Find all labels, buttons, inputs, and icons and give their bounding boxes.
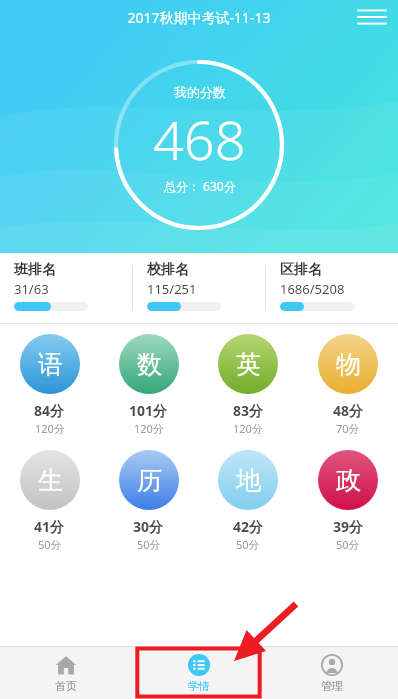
staticText: 42分	[233, 517, 264, 536]
staticText: 120分	[35, 421, 65, 436]
staticText: 物	[336, 349, 361, 380]
button[interactable]: 历	[99, 450, 198, 552]
button[interactable]: 政	[298, 450, 398, 552]
button[interactable]: 数	[99, 334, 198, 436]
button[interactable]: 区排名	[266, 253, 398, 323]
button[interactable]: 班排名	[0, 253, 132, 323]
staticText: 50分	[336, 537, 360, 552]
staticText: 84分	[34, 401, 65, 420]
button[interactable]: 英	[198, 334, 298, 436]
staticText: 30分	[133, 517, 164, 536]
staticText: 校排名	[147, 261, 189, 279]
button[interactable]: 地	[198, 450, 298, 552]
staticText: 41分	[34, 517, 65, 536]
staticText: 班排名	[14, 261, 56, 279]
staticText: 83分	[233, 401, 264, 420]
staticText: 生	[38, 465, 63, 496]
staticText: 101分	[129, 401, 168, 420]
staticText: 120分	[134, 421, 164, 436]
button[interactable]: 管理	[265, 647, 398, 699]
staticText: 我的分数	[174, 84, 226, 100]
staticText: 1686/5208	[280, 280, 345, 298]
staticText: 历	[137, 465, 162, 496]
staticText: 115/251	[147, 280, 197, 298]
staticText: 39分	[333, 517, 364, 536]
staticText: 英	[236, 349, 261, 380]
staticText: 学情	[188, 679, 210, 693]
button[interactable]: 校排名	[133, 253, 265, 323]
button[interactable]: 语	[0, 334, 99, 436]
staticText: 70分	[336, 421, 360, 436]
button[interactable]: 首页	[0, 647, 132, 699]
staticText: 468	[153, 102, 246, 176]
button[interactable]: 学情	[188, 647, 210, 699]
staticText: 120分	[233, 421, 263, 436]
staticText: 地	[236, 465, 261, 496]
button[interactable]: 生	[0, 450, 99, 552]
staticText: 区排名	[280, 261, 322, 279]
staticText: 50分	[137, 537, 161, 552]
staticText: 首页	[55, 679, 77, 693]
staticText: 2017秋期中考试-11-13	[127, 8, 271, 27]
staticText: 语	[38, 349, 63, 380]
button[interactable]: 物	[298, 334, 398, 436]
staticText: 管理	[321, 679, 343, 693]
staticText: 总分： 630分	[164, 178, 236, 194]
staticText: 31/63	[14, 280, 49, 298]
staticText: 48分	[333, 401, 364, 420]
staticText: 数	[137, 349, 162, 380]
staticText: 50分	[236, 537, 260, 552]
staticText: 政	[336, 465, 361, 496]
button[interactable]: Menu	[350, 2, 390, 32]
staticText: 50分	[38, 537, 62, 552]
